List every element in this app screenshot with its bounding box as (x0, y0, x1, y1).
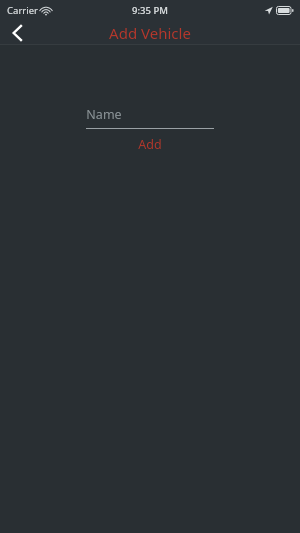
staticText: Name (86, 106, 122, 123)
button[interactable]: Name (86, 105, 214, 129)
button[interactable]: Back (0, 20, 36, 45)
button[interactable]: Add (128, 134, 172, 155)
staticText: Add Vehicle (109, 23, 191, 43)
staticText: Add (138, 136, 162, 153)
staticText: Carrier (7, 4, 38, 17)
staticText: 9:35 PM (132, 4, 168, 17)
